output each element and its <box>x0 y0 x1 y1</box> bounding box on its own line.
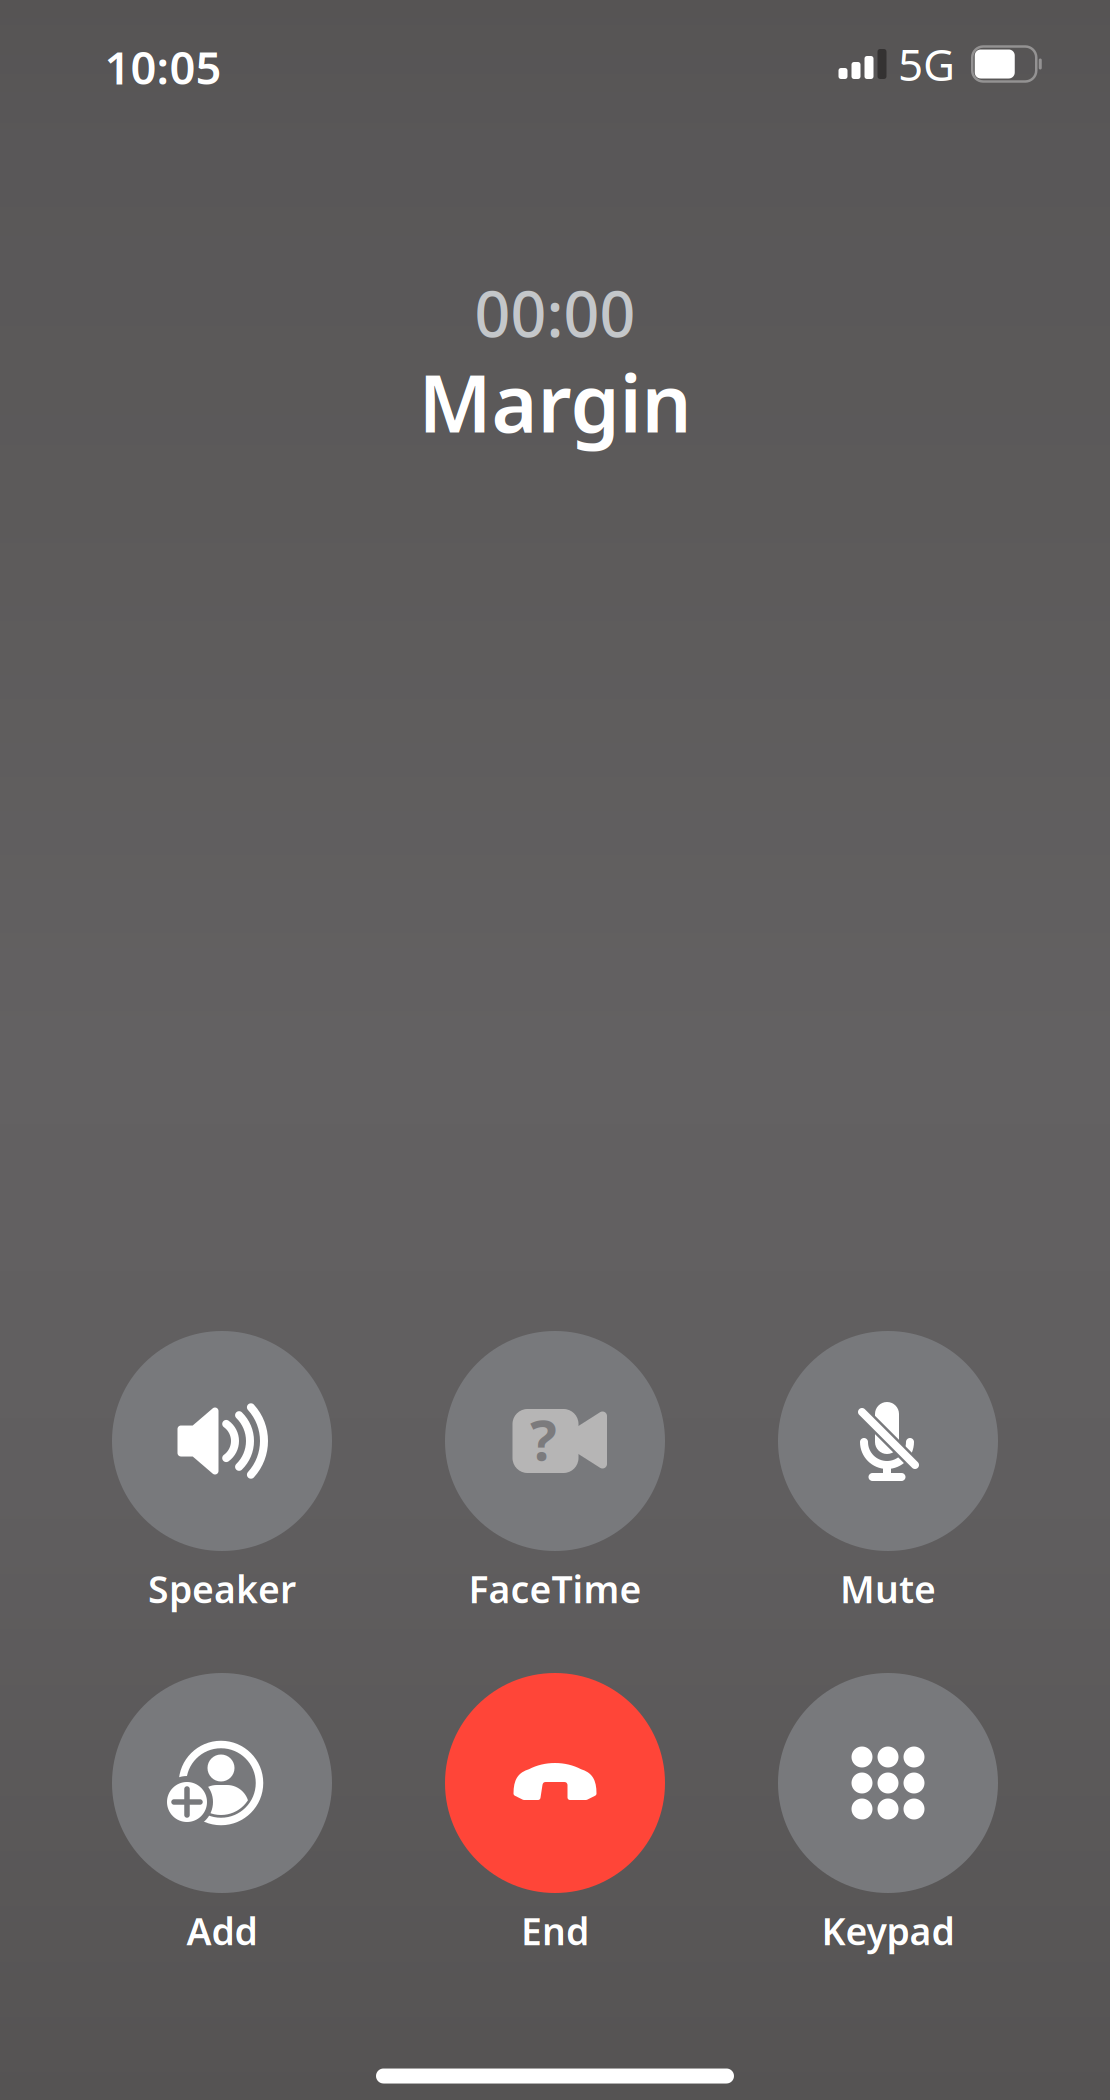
staticText: 10:05 <box>104 37 221 97</box>
button[interactable]: Add <box>72 1670 372 1963</box>
staticText: FaceTime <box>468 1564 641 1614</box>
staticText: Margin <box>418 350 691 454</box>
staticText: End <box>521 1906 589 1956</box>
button[interactable]: Speaker <box>72 1328 372 1621</box>
staticText: 5G <box>898 35 955 93</box>
staticText: Mute <box>840 1564 936 1614</box>
staticText: 00:00 <box>474 271 635 355</box>
button[interactable]: Mute <box>738 1328 1038 1621</box>
button[interactable]: Keypad <box>738 1670 1038 1963</box>
staticText: ? <box>530 1402 557 1476</box>
staticText: Speaker <box>148 1564 296 1614</box>
staticText: Add <box>186 1906 257 1956</box>
button[interactable]: ? <box>405 1328 705 1621</box>
button[interactable]: End <box>405 1670 705 1963</box>
staticText: Keypad <box>821 1906 954 1956</box>
